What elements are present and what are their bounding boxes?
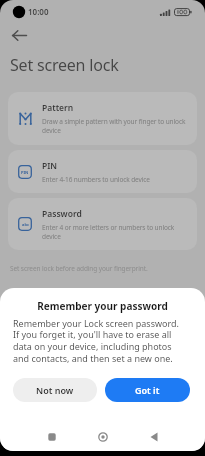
staticText: PIN [42,160,58,172]
staticText: Set screen lock [10,54,119,76]
button[interactable]: Not now [13,378,97,402]
button[interactable] [137,424,171,450]
staticText: Set screen lock before adding your finge… [10,264,148,273]
staticText: Remember your password [0,299,205,313]
staticText: Enter 4-16 numbers to unlock device [42,175,150,184]
button[interactable] [35,424,69,450]
staticText: 10:00 [28,6,49,17]
button[interactable] [6,24,32,46]
staticText: Pattern [42,102,74,114]
button[interactable]: PIN [8,150,197,193]
button[interactable]: abc [8,198,197,250]
button[interactable]: Pattern [8,92,197,145]
staticText: PIN [21,170,29,175]
staticText: Draw a simple pattern with your finger t… [42,117,186,135]
button[interactable] [86,424,120,450]
staticText: Password [42,208,82,220]
button[interactable]: Got it [105,378,190,402]
staticText: Got it [135,384,160,396]
staticText: Remember your Lock screen password. If y… [13,317,179,365]
staticText: Enter 4 or more letters or numbers to un… [42,223,175,241]
staticText: Not now [36,384,74,396]
staticText: abc [22,222,29,227]
